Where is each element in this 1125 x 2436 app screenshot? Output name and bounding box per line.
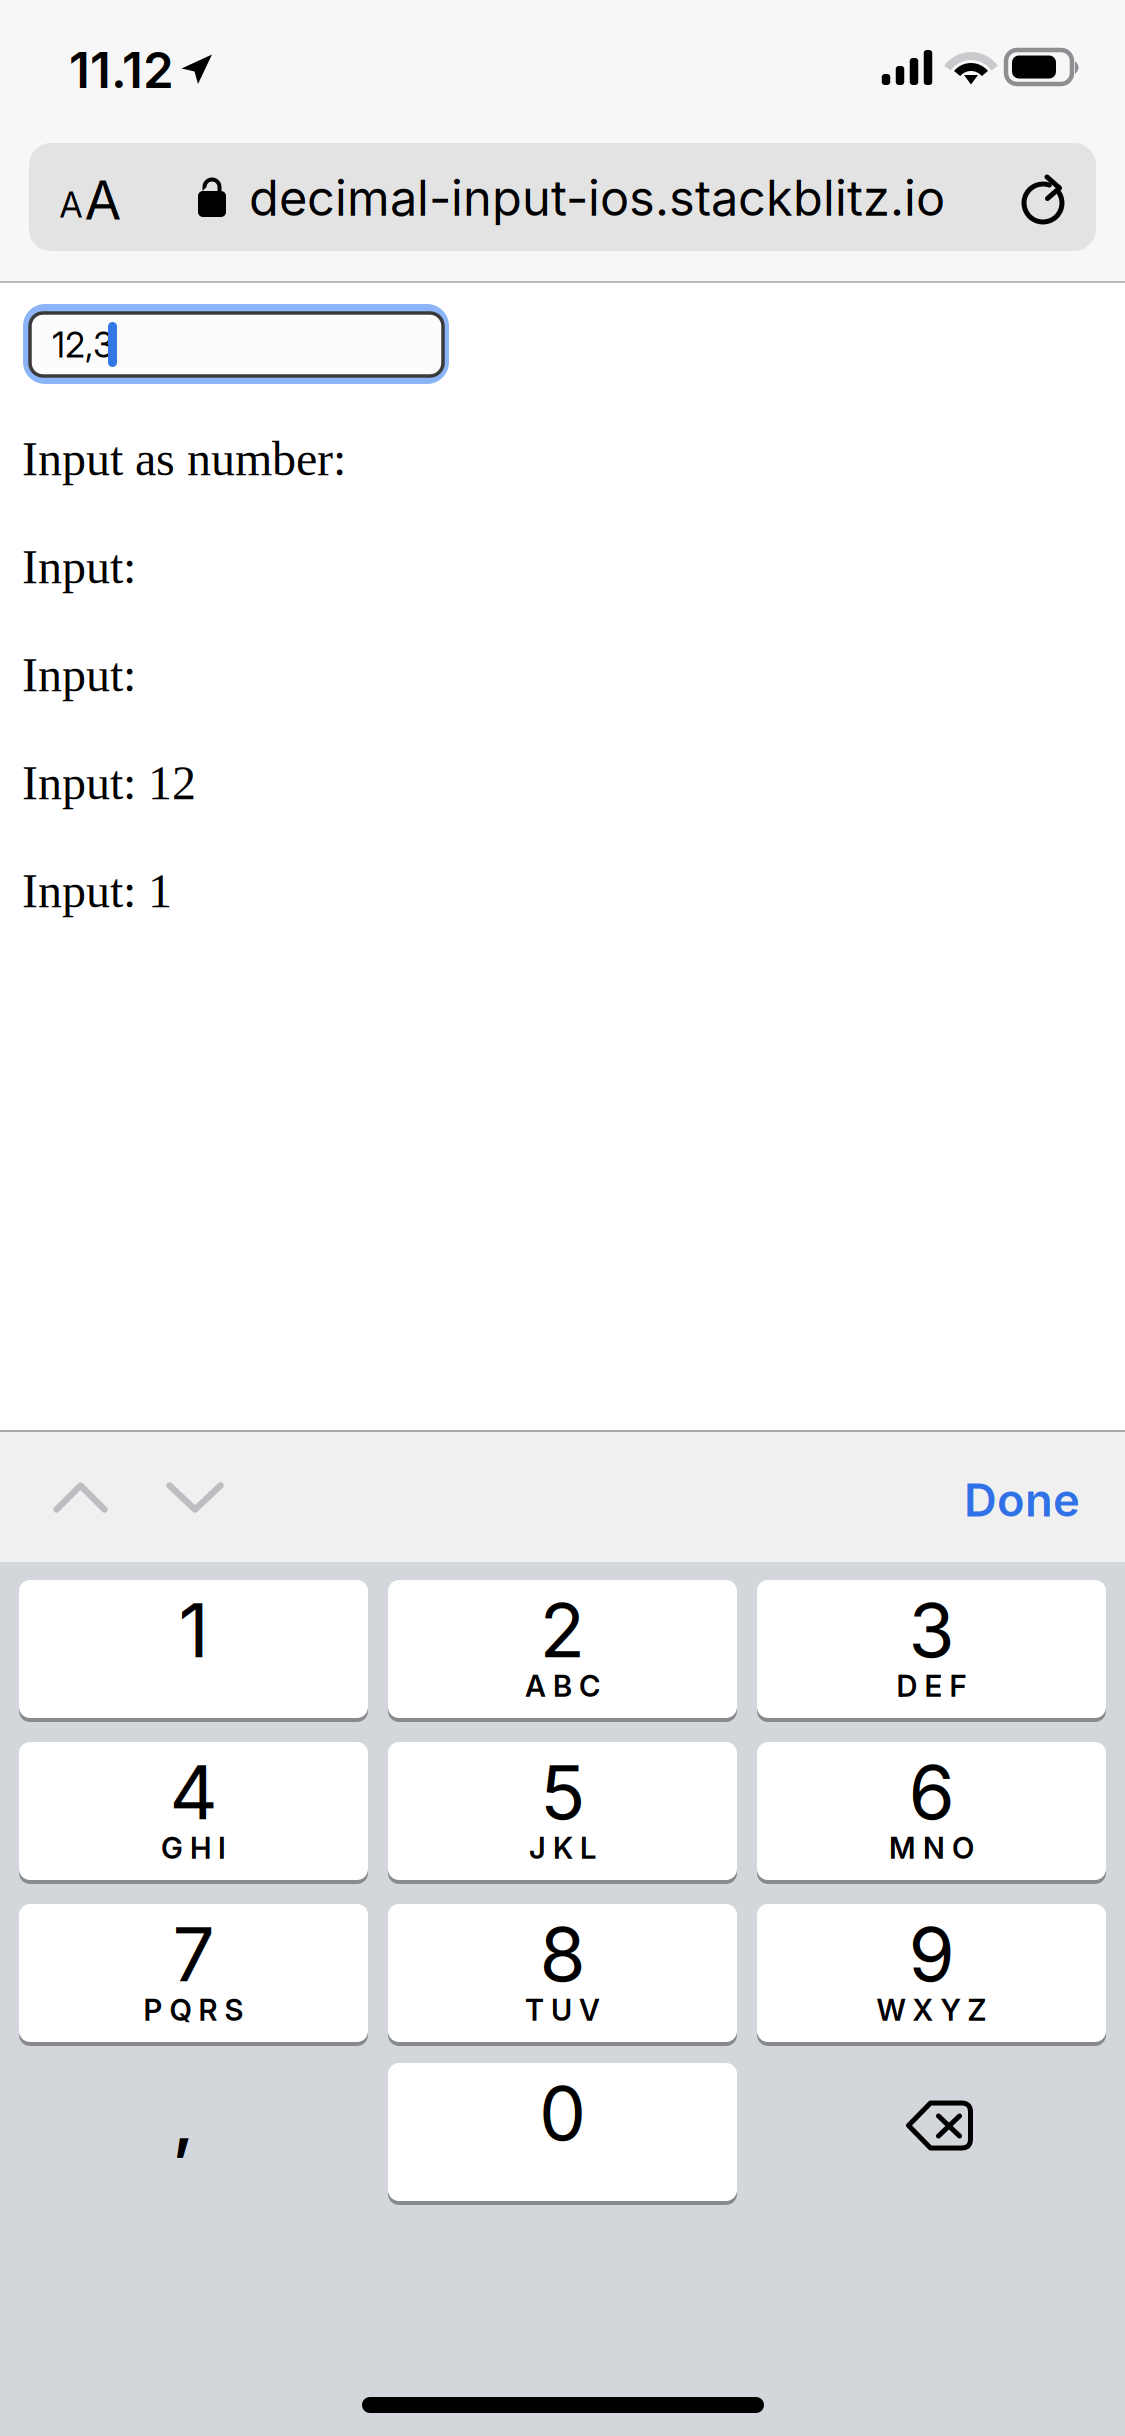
- staticText: 2: [539, 1585, 585, 1675]
- staticText: D E F: [896, 1668, 966, 1704]
- staticText: ,: [173, 2081, 194, 2161]
- staticText: Input as number:: [22, 432, 346, 486]
- button[interactable]: 12,3: [23, 304, 449, 384]
- staticText: Input: 12: [22, 756, 196, 810]
- button[interactable]: Previous field: [25, 1437, 135, 1557]
- staticText: Input: 1: [22, 864, 172, 918]
- button[interactable]: 9: [757, 1904, 1106, 2046]
- button[interactable]: 6: [757, 1742, 1106, 1884]
- staticText: T U V: [525, 1992, 600, 2028]
- button[interactable]: Page settings: [29, 143, 149, 251]
- staticText: M N O: [889, 1830, 974, 1866]
- button[interactable]: Delete: [757, 2063, 1106, 2205]
- button[interactable]: 3: [757, 1580, 1106, 1722]
- staticText: G H I: [161, 1830, 226, 1866]
- staticText: Input:: [22, 540, 136, 594]
- button[interactable]: Next field: [140, 1437, 250, 1557]
- staticText: A: [84, 168, 121, 232]
- staticText: 7: [172, 1909, 214, 1999]
- staticText: 11.12: [69, 40, 174, 100]
- staticText: 0: [539, 2068, 586, 2158]
- staticText: J K L: [529, 1830, 596, 1866]
- staticText: 3: [908, 1585, 954, 1675]
- staticText: 4: [169, 1747, 217, 1837]
- staticText: decimal-input-ios.stackblitz.io: [249, 169, 945, 227]
- button[interactable]: Done: [937, 1440, 1107, 1560]
- staticText: Input:: [22, 648, 136, 702]
- staticText: 6: [908, 1747, 954, 1837]
- staticText: A B C: [525, 1668, 600, 1704]
- staticText: 8: [539, 1909, 585, 1999]
- button[interactable]: [29, 143, 1096, 251]
- button[interactable]: 8: [388, 1904, 737, 2046]
- staticText: 5: [540, 1747, 585, 1837]
- staticText: 1: [178, 1585, 208, 1675]
- staticText: P Q R S: [143, 1992, 243, 2028]
- button[interactable]: Reload: [1021, 170, 1069, 224]
- staticText: A: [59, 184, 82, 226]
- button[interactable]: 4: [19, 1742, 368, 1884]
- button[interactable]: 7: [19, 1904, 368, 2046]
- staticText: 12,3: [52, 324, 114, 366]
- staticText: Done: [964, 1473, 1080, 1527]
- button[interactable]: 2: [388, 1580, 737, 1722]
- button[interactable]: 0: [388, 2063, 737, 2205]
- staticText: W X Y Z: [876, 1992, 986, 2028]
- staticText: 9: [908, 1909, 954, 1999]
- button[interactable]: 1: [19, 1580, 368, 1722]
- button[interactable]: Comma: [19, 2063, 368, 2205]
- button[interactable]: 5: [388, 1742, 737, 1884]
